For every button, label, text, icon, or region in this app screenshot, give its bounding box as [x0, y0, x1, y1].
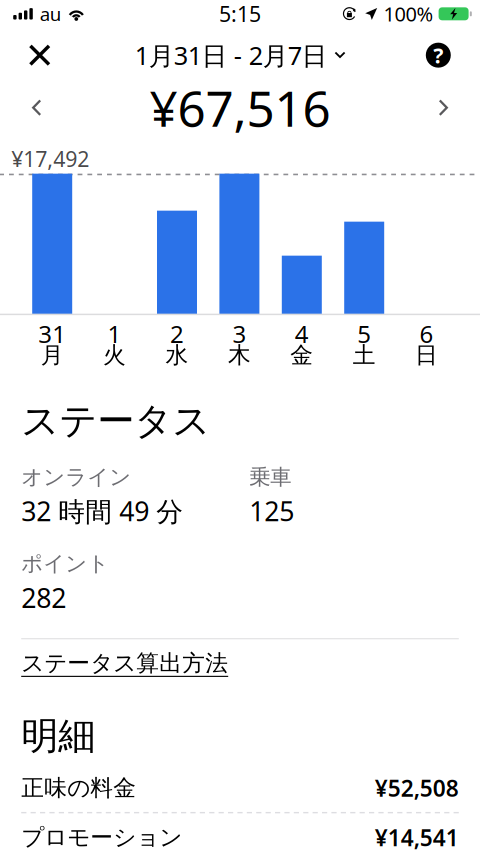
staticText: 100%: [384, 0, 434, 27]
button[interactable]: 前の週: [14, 89, 57, 127]
button[interactable]: 次の週: [423, 89, 466, 127]
staticText: プロモーション: [21, 823, 182, 851]
staticText: 木: [228, 341, 251, 369]
staticText: 3: [232, 318, 246, 350]
button[interactable]: プロモーション: [21, 813, 459, 854]
staticText: ¥17,492: [11, 145, 89, 173]
staticText: ?: [433, 41, 443, 69]
staticText: ステータス: [21, 398, 210, 444]
button[interactable]: ヘルプ: [415, 32, 462, 79]
staticText: 2: [170, 318, 184, 350]
staticText: 1月31日 - 2月7日: [135, 38, 327, 72]
staticText: 1: [108, 318, 122, 350]
staticText: ¥14,541: [375, 822, 459, 852]
staticText: au: [40, 1, 62, 26]
staticText: 月: [41, 341, 64, 369]
staticText: 4: [295, 318, 309, 350]
staticText: 日: [415, 341, 438, 369]
staticText: オンライン: [21, 464, 131, 490]
staticText: 土: [353, 341, 376, 369]
button[interactable]: ステータス算出方法: [21, 639, 228, 681]
staticText: ¥52,508: [375, 773, 459, 803]
staticText: 125: [249, 493, 294, 529]
staticText: ¥67,516: [149, 75, 330, 140]
staticText: 5:15: [219, 0, 261, 28]
staticText: ステータス算出方法: [21, 649, 228, 677]
button[interactable]: 正味の料金: [21, 764, 459, 812]
staticText: 5: [357, 318, 371, 350]
staticText: 水: [165, 341, 188, 369]
staticText: 乗車: [249, 464, 291, 490]
staticText: 32 時間 49 分: [21, 493, 183, 529]
staticText: 31: [38, 318, 66, 350]
button[interactable]: 閉じる: [18, 34, 61, 77]
staticText: 正味の料金: [21, 774, 136, 802]
staticText: 6: [420, 318, 434, 350]
staticText: 火: [103, 341, 126, 369]
staticText: 282: [21, 580, 66, 615]
staticText: 金: [290, 341, 313, 369]
staticText: 明細: [21, 713, 95, 759]
staticText: ポイント: [21, 551, 109, 577]
